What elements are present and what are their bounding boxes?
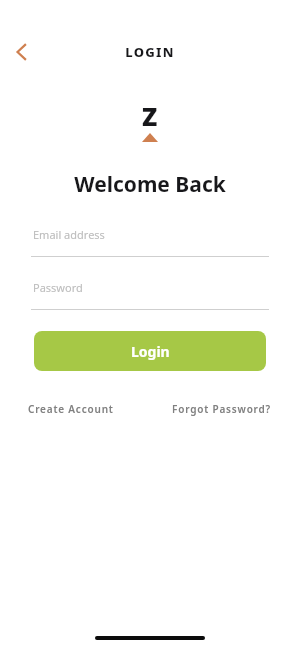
staticText: Forgot Password? (172, 402, 272, 416)
staticText: Login (131, 342, 170, 361)
button[interactable]: Password (31, 277, 269, 310)
staticText: Welcome Back (74, 170, 226, 199)
button[interactable]: Create Account (28, 398, 114, 420)
button[interactable]: Back (4, 36, 40, 68)
staticText: Z (142, 99, 158, 133)
button[interactable]: Email address (31, 224, 269, 257)
button[interactable]: Login (34, 331, 266, 371)
staticText: LOGIN (125, 43, 175, 61)
staticText: Create Account (28, 402, 114, 416)
staticText: Password (33, 280, 83, 295)
button[interactable]: Forgot Password? (172, 398, 272, 420)
staticText: Email address (33, 227, 105, 242)
